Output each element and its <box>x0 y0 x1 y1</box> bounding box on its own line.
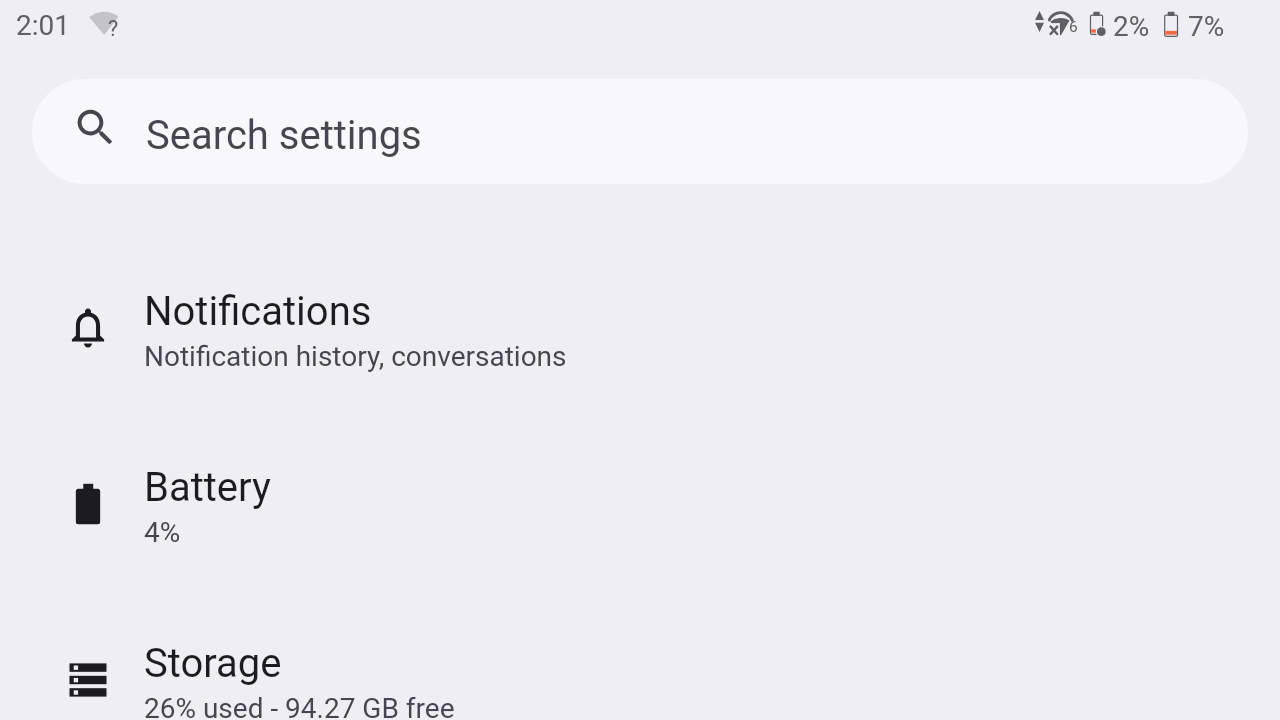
staticText: Notifications <box>144 288 372 335</box>
staticText: 26% used - 94.27 GB free <box>144 692 455 720</box>
staticText: Storage <box>144 640 282 687</box>
staticText: Notification history, conversations <box>144 340 567 373</box>
button[interactable]: Notifications <box>0 237 1280 413</box>
staticText: 7% <box>1188 10 1225 43</box>
button[interactable]: Search settings <box>32 79 1248 184</box>
staticText: ? <box>108 16 119 41</box>
staticText: 4% <box>144 516 181 549</box>
staticText: 2:01 <box>16 9 70 42</box>
staticText: Battery <box>144 464 271 511</box>
button[interactable]: Battery <box>0 413 1280 589</box>
staticText: 2% <box>1113 10 1150 43</box>
staticText: Search settings <box>146 112 422 159</box>
staticText: 6 <box>1069 18 1078 36</box>
button[interactable]: Storage <box>0 589 1280 720</box>
